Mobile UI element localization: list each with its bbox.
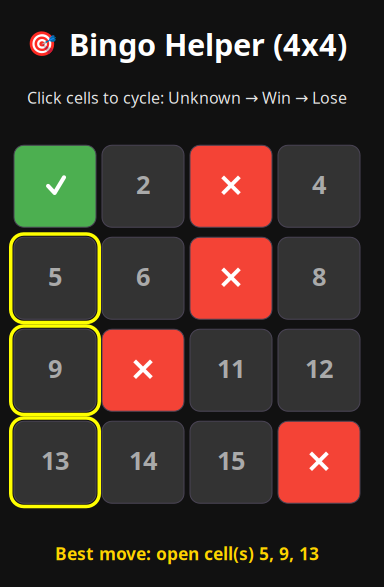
button[interactable]: Cell 5: [14, 237, 96, 319]
button[interactable]: Cell 2: [102, 145, 184, 227]
button[interactable]: Cell 8: [278, 237, 360, 319]
button[interactable]: Cell 11: [190, 329, 272, 411]
button[interactable]: Cell 1: [14, 145, 96, 227]
staticText: 5: [48, 259, 62, 293]
staticText: Click cells to cycle: Unknown → Win → Lo…: [27, 87, 347, 108]
staticText: 2: [136, 167, 150, 201]
button[interactable]: Cell 7: [190, 237, 272, 319]
staticText: 15: [217, 443, 245, 477]
button[interactable]: Cell 16: [278, 421, 360, 503]
staticText: 6: [136, 259, 150, 293]
staticText: 14: [129, 443, 157, 477]
button[interactable]: Cell 15: [190, 421, 272, 503]
staticText: 4: [312, 167, 326, 201]
button[interactable]: Cell 14: [102, 421, 184, 503]
staticText: 13: [41, 443, 69, 477]
staticText: 🎯: [27, 30, 57, 58]
staticText: 12: [305, 351, 333, 385]
button[interactable]: Cell 4: [278, 145, 360, 227]
staticText: 11: [217, 351, 245, 385]
staticText: Bingo Helper (4x4): [69, 24, 347, 64]
button[interactable]: Cell 10: [102, 329, 184, 411]
staticText: Best move: open cell(s) 5, 9, 13: [55, 542, 319, 565]
button[interactable]: Cell 3: [190, 145, 272, 227]
button[interactable]: Cell 6: [102, 237, 184, 319]
button[interactable]: Cell 13: [14, 421, 96, 503]
button[interactable]: Cell 9: [14, 329, 96, 411]
staticText: 9: [48, 351, 62, 385]
staticText: 8: [312, 259, 326, 293]
button[interactable]: Cell 12: [278, 329, 360, 411]
